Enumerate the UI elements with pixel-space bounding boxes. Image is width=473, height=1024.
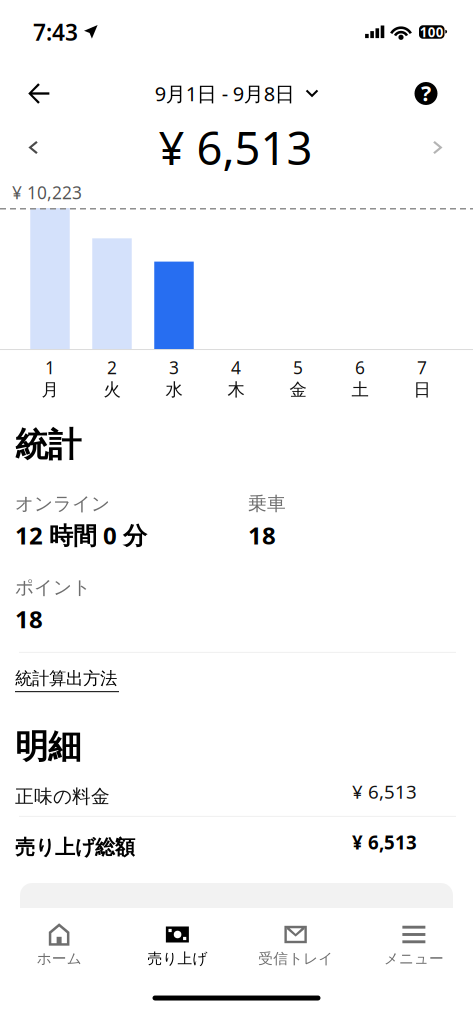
staticText: 土 [351, 379, 368, 400]
button[interactable]: Next week [416, 125, 460, 169]
staticText: 正味の料金 [15, 785, 110, 808]
button[interactable]: Help [404, 71, 448, 115]
staticText: 7:43 [33, 17, 78, 47]
staticText: 金 [289, 379, 306, 400]
staticText: 統計 [15, 424, 81, 465]
button[interactable]: Back [17, 71, 61, 115]
staticText: 日 [413, 379, 430, 400]
staticText: 18 [15, 603, 43, 635]
staticText: オンライン [15, 492, 110, 515]
staticText: 5 [293, 356, 303, 379]
staticText: ポイント [15, 576, 91, 599]
staticText: ¥ 6,513 [158, 117, 312, 178]
staticText: ¥ 6,513 [352, 830, 417, 855]
staticText: 火 [103, 379, 120, 400]
button[interactable]: 売り上げ [118, 906, 236, 977]
staticText: メニュー [384, 949, 444, 967]
staticText: 18 [248, 519, 276, 551]
button[interactable]: ホーム [0, 906, 118, 977]
button[interactable]: 9月1日 - 9月8日 [149, 70, 324, 117]
staticText: 統計算出方法 [15, 668, 117, 689]
staticText: 受信トレイ [258, 949, 333, 967]
staticText: 木 [227, 379, 244, 400]
staticText: 100 [420, 23, 444, 41]
staticText: 売り上げ [147, 949, 207, 967]
staticText: 4 [231, 356, 241, 379]
staticText: 1 [45, 356, 55, 379]
staticText: 売り上げ総額 [15, 835, 135, 860]
button[interactable]: 統計算出方法 [15, 666, 119, 694]
staticText: 水 [165, 379, 182, 400]
staticText: 6 [355, 356, 365, 379]
staticText: 3 [169, 356, 179, 379]
staticText: 9月1日 - 9月8日 [155, 80, 295, 107]
staticText: ¥ 10,223 [12, 181, 82, 204]
staticText: ホーム [37, 949, 82, 967]
staticText: 12 時間 0 分 [15, 519, 147, 551]
staticText: 7 [417, 356, 427, 379]
staticText: 乗車 [248, 492, 286, 515]
button[interactable]: メニュー [355, 906, 473, 977]
staticText: 明細 [15, 726, 81, 767]
staticText: ¥ 6,513 [352, 779, 417, 804]
staticText: 月 [41, 379, 58, 400]
staticText: 2 [107, 356, 117, 379]
button[interactable]: Previous week [11, 125, 55, 169]
button[interactable]: 受信トレイ [236, 906, 355, 977]
staticText: ? [421, 79, 431, 107]
